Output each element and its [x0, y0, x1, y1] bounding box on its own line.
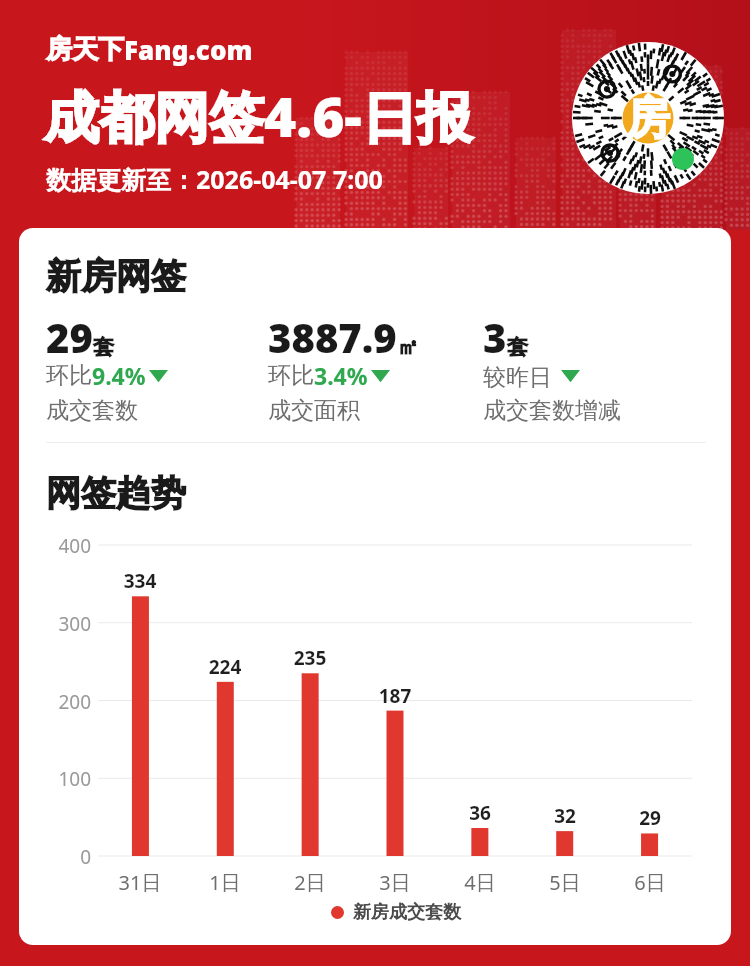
- staticText: 新房成交套数: [353, 901, 461, 924]
- staticText: 3.4%: [314, 360, 368, 391]
- button[interactable]: 新房成交套数: [331, 901, 461, 924]
- staticText: 32: [535, 803, 595, 829]
- staticText: 187: [365, 683, 425, 709]
- staticText: 成交套数: [46, 396, 138, 425]
- button[interactable]: 房天下 Fang.com: [46, 32, 253, 67]
- staticText: 9.4%: [92, 360, 146, 391]
- staticText: 环比: [46, 361, 92, 390]
- staticText: 334: [110, 568, 170, 594]
- staticText: 套: [93, 334, 114, 360]
- staticText: 3: [483, 310, 507, 364]
- staticText: 数据更新至：2026-04-07 7:00: [46, 162, 383, 196]
- staticText: 1日: [190, 869, 260, 896]
- staticText: 成交面积: [268, 396, 360, 425]
- button[interactable]: 3887.9: [262, 308, 474, 428]
- staticText: 较昨日: [483, 360, 558, 391]
- button[interactable]: 小程序二维码: [572, 42, 724, 194]
- staticText: 235: [280, 645, 340, 671]
- staticText: 200: [37, 689, 91, 715]
- staticText: 成都网签4.6-日报: [44, 78, 472, 153]
- staticText: 0: [37, 844, 91, 870]
- staticText: 成交套数增减: [483, 396, 621, 425]
- staticText: 31日: [105, 869, 175, 896]
- staticText: 新房网签: [46, 254, 186, 298]
- staticText: 网签趋势: [46, 471, 186, 515]
- button[interactable]: 29: [40, 308, 252, 428]
- staticText: 3日: [360, 869, 430, 896]
- button[interactable]: 3: [477, 308, 689, 428]
- staticText: 房: [626, 91, 670, 146]
- staticText: 300: [37, 611, 91, 637]
- staticText: 224: [195, 654, 255, 680]
- staticText: ㎡: [397, 334, 418, 360]
- staticText: Fang.com: [124, 32, 253, 67]
- staticText: 36: [450, 800, 510, 826]
- staticText: 5日: [530, 869, 600, 896]
- staticText: 房天下: [46, 33, 124, 66]
- staticText: 29: [620, 805, 680, 831]
- staticText: 3887.9: [268, 310, 397, 364]
- staticText: 6日: [615, 869, 685, 896]
- staticText: 100: [37, 766, 91, 792]
- staticText: 套: [507, 334, 528, 360]
- staticText: 2日: [275, 869, 345, 896]
- staticText: 4日: [445, 869, 515, 896]
- staticText: 400: [37, 533, 91, 559]
- staticText: 29: [46, 310, 93, 364]
- staticText: 环比: [268, 361, 314, 390]
